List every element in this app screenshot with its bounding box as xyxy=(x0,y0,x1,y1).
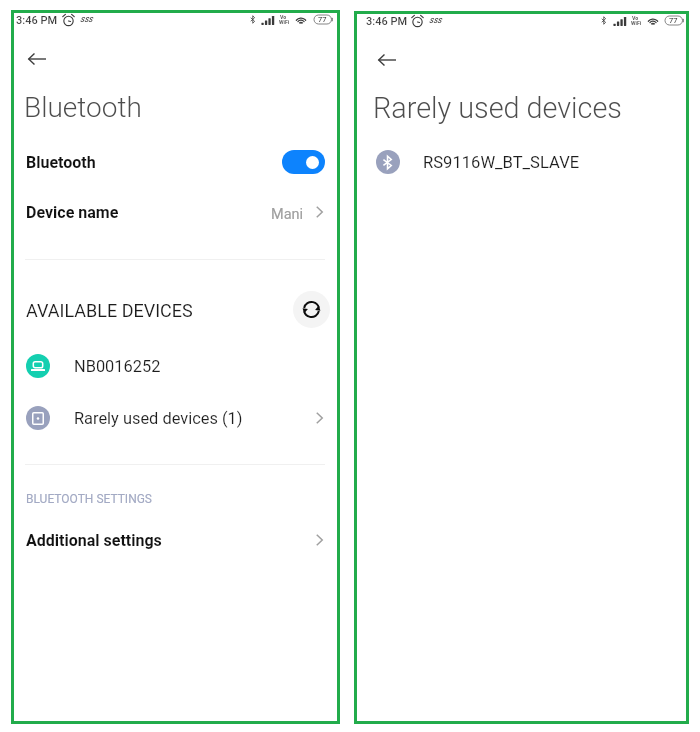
staticText: Bluetooth xyxy=(24,91,142,124)
staticText: Device name xyxy=(26,203,119,222)
staticText: Vo xyxy=(280,14,287,20)
staticText: BLUETOOTH SETTINGS xyxy=(26,492,152,506)
button[interactable]: NB0016252 xyxy=(11,354,340,378)
staticText: RS9116W_BT_SLAVE xyxy=(423,153,580,172)
button[interactable]: Additional settings xyxy=(11,518,340,562)
staticText: WiFi xyxy=(279,19,290,25)
staticText: Rarely used devices xyxy=(373,91,622,125)
button[interactable]: Device name xyxy=(11,190,340,234)
button[interactable]: Refresh xyxy=(293,291,330,328)
staticText: AVAILABLE DEVICES xyxy=(26,300,193,321)
staticText: SSS xyxy=(429,17,442,25)
staticText: 77 xyxy=(669,16,678,25)
button[interactable]: Back xyxy=(18,40,56,78)
staticText: SSS xyxy=(80,16,93,24)
staticText: 3:46 PM xyxy=(366,15,408,28)
staticText: Rarely used devices (1) xyxy=(74,409,243,428)
staticText: NB0016252 xyxy=(74,357,161,376)
button[interactable]: Rarely used devices (1) xyxy=(11,406,340,430)
button[interactable]: Bluetooth xyxy=(11,140,340,184)
staticText: Bluetooth xyxy=(26,153,96,172)
staticText: 3:46 PM xyxy=(16,14,58,27)
staticText: WiFi xyxy=(631,20,642,26)
staticText: Vo xyxy=(632,15,639,21)
staticText: Additional settings xyxy=(26,531,162,550)
button[interactable]: RS9116W_BT_SLAVE xyxy=(354,150,689,174)
staticText: 77 xyxy=(318,15,327,24)
button[interactable]: Back xyxy=(368,41,406,79)
staticText: Mani xyxy=(271,206,304,223)
